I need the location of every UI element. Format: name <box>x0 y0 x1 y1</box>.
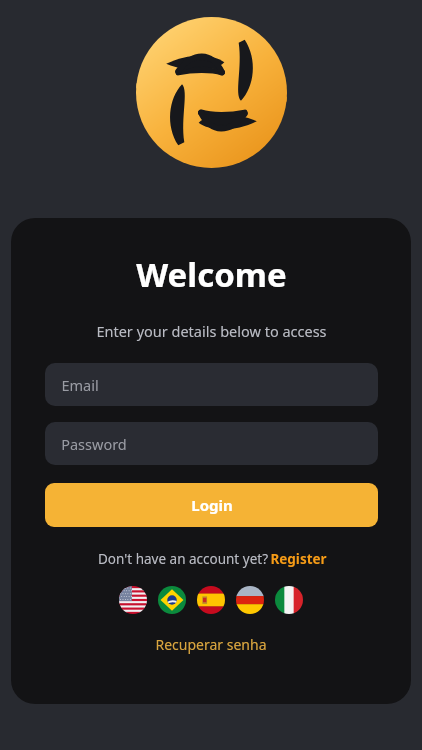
button[interactable]: Spain <box>197 586 225 614</box>
button[interactable]: Brazil <box>158 586 186 614</box>
staticText: Password <box>61 434 127 454</box>
other: App logo <box>136 17 287 168</box>
button[interactable]: United States <box>119 586 147 614</box>
staticText: Register <box>270 550 327 568</box>
staticText: Welcome <box>136 252 287 297</box>
staticText: Recuperar senha <box>155 635 267 654</box>
button[interactable]: Login <box>45 483 378 527</box>
staticText: Login <box>191 495 233 515</box>
staticText: Enter your details below to access <box>96 321 327 341</box>
button[interactable]: Register <box>270 550 327 568</box>
staticText: Email <box>61 375 99 395</box>
button[interactable]: Germany <box>236 586 264 614</box>
button[interactable]: Email <box>45 363 378 406</box>
button[interactable]: Password <box>45 422 378 465</box>
button[interactable]: Italy <box>275 586 303 614</box>
button[interactable]: Recuperar senha <box>155 635 267 654</box>
staticText: Don't have an account yet? <box>96 550 270 568</box>
